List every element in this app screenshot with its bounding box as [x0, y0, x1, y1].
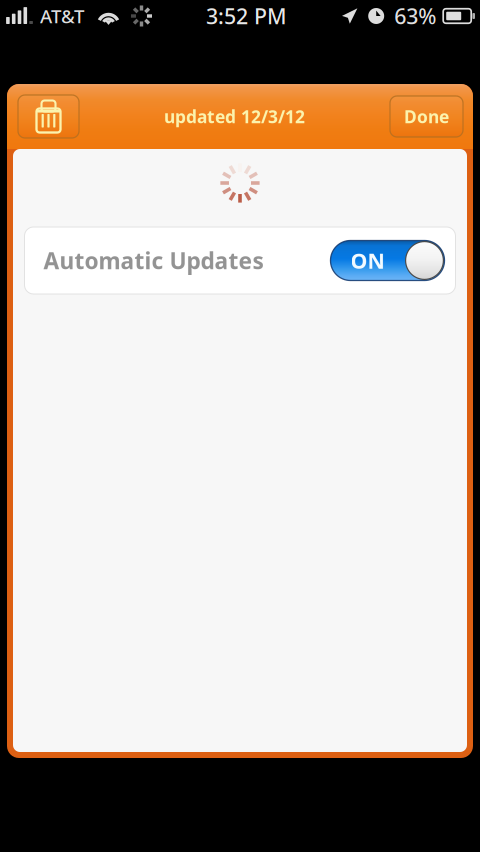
staticText: 3:52 PM [206, 2, 287, 30]
button[interactable]: Delete [18, 95, 79, 138]
button[interactable]: Done [390, 96, 463, 137]
staticText: Automatic Updates [43, 245, 263, 275]
staticText: 63% [394, 2, 436, 30]
button[interactable]: Automatic Updates [24, 227, 455, 294]
staticText: updated 12/3/12 [164, 105, 305, 128]
staticText: AT&T [40, 4, 84, 28]
staticText: Done [404, 105, 449, 128]
staticText: ON [350, 246, 384, 275]
